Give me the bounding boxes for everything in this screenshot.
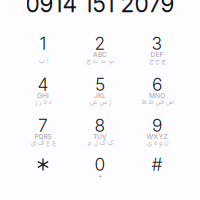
- staticText: ص ض ط ظ: [141, 96, 173, 106]
- button[interactable]: 1: [14, 29, 71, 70]
- staticText: چ ح خ: [149, 55, 165, 65]
- staticText: 2: [94, 33, 105, 54]
- button[interactable]: 2: [71, 29, 128, 70]
- staticText: MNO: [149, 91, 165, 100]
- staticText: 1: [39, 33, 46, 54]
- button[interactable]: 4: [14, 70, 71, 111]
- button[interactable]: #: [128, 150, 185, 191]
- button[interactable]: 6: [128, 70, 185, 111]
- staticText: #: [151, 154, 162, 175]
- button[interactable]: 9: [128, 111, 185, 152]
- staticText: ABC: [93, 50, 107, 59]
- button[interactable]: 3: [128, 29, 185, 70]
- staticText: WXYZ: [146, 132, 167, 141]
- staticText: ک گ ل م: [87, 137, 113, 147]
- staticText: 4: [37, 74, 48, 95]
- button[interactable]: 7: [14, 111, 71, 152]
- staticText: DEF: [150, 50, 163, 59]
- staticText: 3: [151, 33, 162, 54]
- staticText: د ذ ر ز: [35, 96, 51, 106]
- staticText: 0914 151 2079: [25, 0, 174, 18]
- staticText: 0: [94, 154, 105, 175]
- staticText: +: [98, 171, 102, 180]
- button[interactable]: 0: [71, 150, 128, 191]
- button[interactable]: 5: [71, 70, 128, 111]
- staticText: 5: [95, 74, 105, 95]
- staticText: PQRS: [34, 132, 51, 141]
- staticText: JKL: [94, 91, 106, 100]
- staticText: 9: [152, 115, 162, 136]
- staticText: پ ت ث ج: [86, 55, 114, 65]
- staticText: ن و ه ی: [146, 137, 167, 147]
- staticText: 6: [152, 74, 162, 95]
- staticText: ع غ ف ق: [30, 137, 55, 147]
- staticText: GHI: [37, 91, 49, 100]
- button[interactable]: [14, 150, 71, 191]
- staticText: TUV: [93, 132, 107, 141]
- staticText: ژ س ش: [89, 96, 111, 106]
- staticText: ا ب: [38, 55, 47, 65]
- button[interactable]: 8: [71, 111, 128, 152]
- staticText: 8: [94, 115, 105, 136]
- staticText: 7: [38, 115, 48, 136]
